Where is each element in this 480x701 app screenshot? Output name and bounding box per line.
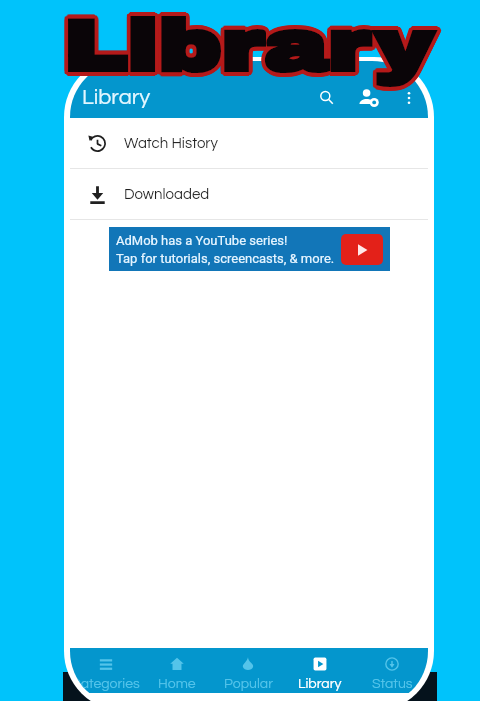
button[interactable]: Search: [305, 77, 347, 118]
button[interactable]: Watch History: [70, 118, 428, 168]
button[interactable]: Downloaded: [70, 169, 428, 219]
staticText: AdMob has a YouTube series!: [116, 233, 288, 248]
staticText: Popular: [224, 677, 273, 691]
staticText: Tap for tutorials, screencasts, & more.: [116, 251, 335, 266]
button[interactable]: Account: [347, 77, 389, 118]
button[interactable]: AdMob has a YouTube series!: [109, 227, 390, 271]
button[interactable]: More options: [389, 78, 428, 117]
staticText: Library: [82, 86, 151, 109]
staticText: Downloaded: [124, 187, 210, 202]
button[interactable]: Categories: [70, 648, 141, 693]
staticText: Watch History: [124, 136, 218, 151]
staticText: Library: [298, 677, 342, 691]
button[interactable]: Popular: [212, 648, 284, 693]
button[interactable]: Home: [141, 648, 212, 693]
button[interactable]: Library: [284, 648, 356, 693]
staticText: Categories: [71, 677, 140, 691]
staticText: Home: [158, 677, 196, 691]
staticText: Status: [372, 677, 413, 691]
button[interactable]: Status: [356, 648, 428, 693]
